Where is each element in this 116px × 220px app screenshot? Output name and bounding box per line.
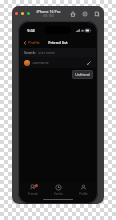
staticText: iPhone 16 Pro bbox=[36, 9, 61, 14]
staticText: Unfriend bbox=[75, 72, 90, 77]
button[interactable]: Search: bbox=[20, 48, 96, 57]
button[interactable]: Zoom bbox=[27, 12, 30, 15]
staticText: user name bbox=[38, 50, 55, 55]
button[interactable]: Events bbox=[46, 182, 71, 197]
button[interactable]: Friends bbox=[20, 182, 46, 197]
button[interactable]: Minimize bbox=[21, 12, 24, 15]
staticText: username bbox=[32, 60, 49, 65]
staticText: Search: bbox=[24, 50, 36, 55]
button[interactable]: Screenshot bbox=[93, 10, 100, 17]
button[interactable]: Profile bbox=[71, 182, 96, 197]
button[interactable]: Edit friend bbox=[85, 59, 92, 66]
staticText: Friend list bbox=[48, 40, 68, 45]
button[interactable]: Profile bbox=[20, 38, 43, 47]
staticText: Profile bbox=[28, 40, 40, 45]
button[interactable]: Settings bbox=[81, 10, 88, 17]
button[interactable]: Unfriend bbox=[72, 70, 93, 79]
staticText: iOS 18.3 bbox=[43, 14, 54, 18]
staticText: Profile bbox=[79, 192, 88, 196]
button[interactable]: Close bbox=[15, 12, 18, 15]
button[interactable]: username bbox=[20, 57, 96, 68]
staticText: Friends bbox=[28, 192, 38, 196]
button[interactable]: Home bbox=[69, 10, 76, 17]
staticText: Events bbox=[54, 192, 63, 196]
staticText: 9:34 bbox=[27, 28, 35, 33]
